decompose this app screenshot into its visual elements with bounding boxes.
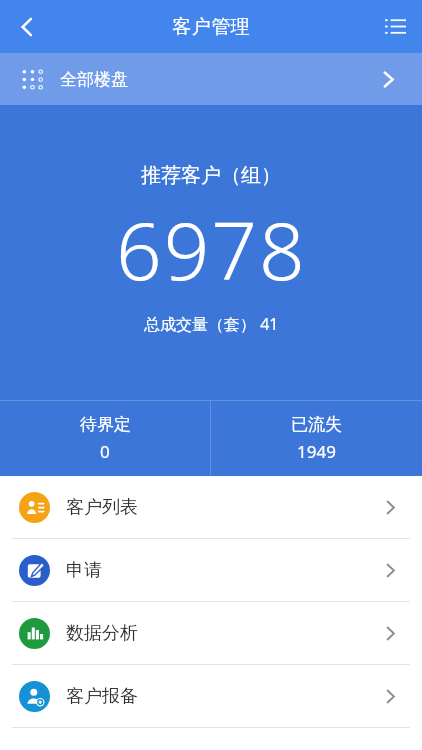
staticText: 推荐客户（组）: [141, 163, 281, 188]
staticText: 已流失: [291, 414, 342, 435]
button[interactable]: Menu: [368, 0, 422, 53]
staticText: 1949: [297, 440, 336, 463]
staticText: 全部楼盘: [60, 69, 128, 90]
button[interactable]: 客户列表: [0, 476, 422, 538]
button[interactable]: 客户报备: [0, 665, 422, 727]
staticText: 客户报备: [66, 685, 138, 708]
staticText: 0: [100, 440, 110, 463]
button[interactable]: 数据分析: [0, 602, 422, 664]
staticText: 客户列表: [66, 496, 138, 519]
staticText: 申请: [66, 559, 102, 582]
staticText: 总成交量（套） 41: [144, 313, 279, 335]
staticText: 6978: [116, 194, 307, 303]
staticText: 待界定: [80, 414, 131, 435]
button[interactable]: 已流失: [211, 401, 422, 476]
staticText: 数据分析: [66, 622, 138, 645]
button[interactable]: 全部楼盘: [0, 53, 422, 105]
button[interactable]: Back: [0, 0, 54, 53]
button[interactable]: 待界定: [0, 401, 210, 476]
staticText: 客户管理: [172, 15, 250, 39]
button[interactable]: 申请: [0, 539, 422, 601]
